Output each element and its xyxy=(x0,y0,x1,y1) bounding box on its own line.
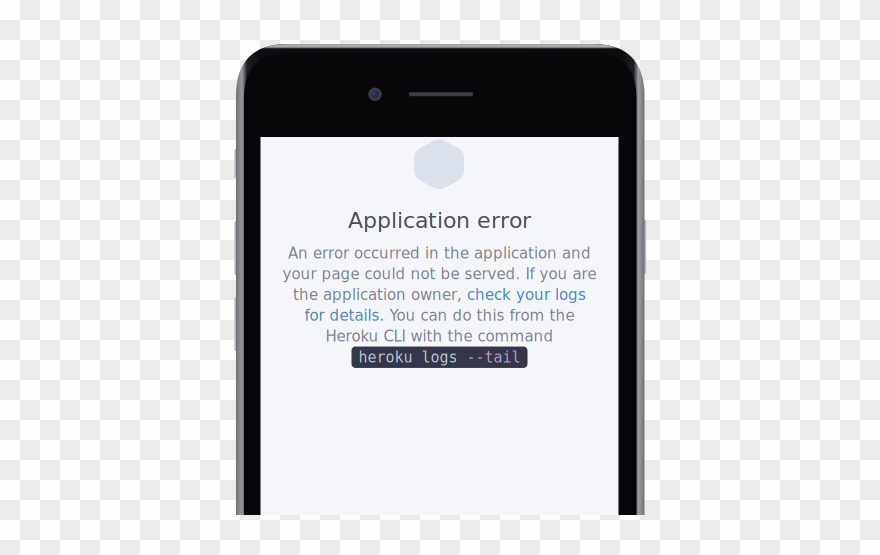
staticText: Heroku CLI with the command xyxy=(325,327,553,345)
staticText: heroku logs xyxy=(358,348,466,366)
staticText: the application owner, xyxy=(293,286,467,303)
staticText: your page could not be served. If you ar… xyxy=(282,265,596,283)
staticText: for details xyxy=(304,307,379,324)
staticText: An error occurred in the application and xyxy=(288,244,591,262)
staticText: --tail xyxy=(466,348,520,366)
staticText: check your logs xyxy=(467,286,586,303)
button[interactable]: Application error xyxy=(348,207,531,233)
staticText: Application error xyxy=(348,207,531,233)
staticText: . You can do this from the xyxy=(379,307,574,324)
